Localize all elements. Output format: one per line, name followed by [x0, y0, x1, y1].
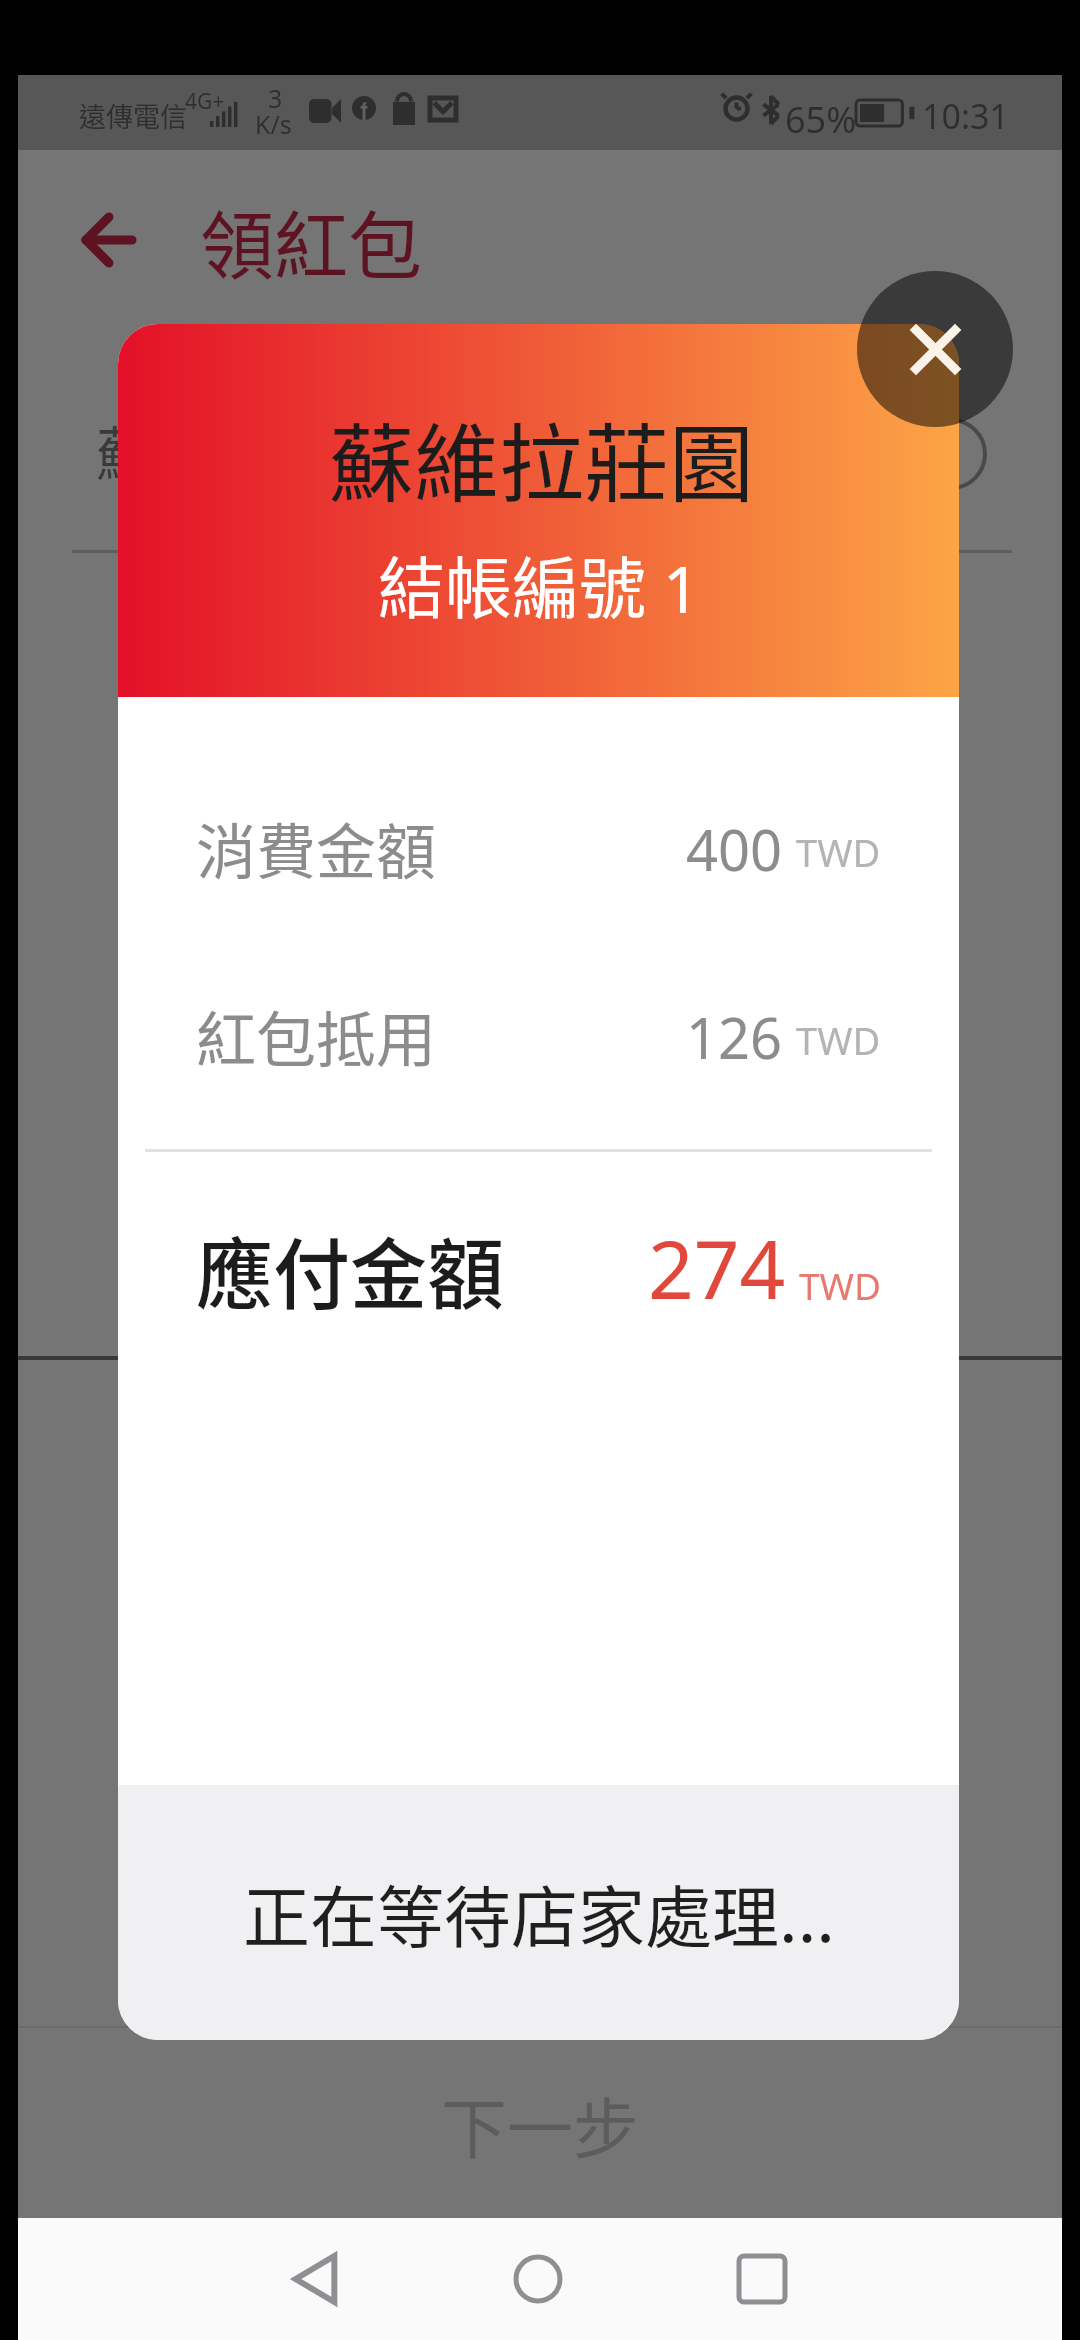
- button[interactable]: Recents: [702, 2218, 822, 2340]
- staticText: TWD: [799, 1260, 881, 1310]
- staticText: 下一步: [441, 2076, 639, 2172]
- staticText: TWD: [796, 826, 881, 878]
- staticText: 4G+: [185, 87, 225, 116]
- staticText: 274: [648, 1213, 786, 1322]
- staticText: 400: [686, 811, 783, 887]
- staticText: TWD: [796, 1014, 881, 1066]
- button[interactable]: 下一步: [18, 2064, 1062, 2184]
- staticText: 結帳編號: [378, 535, 646, 632]
- button[interactable]: Close: [857, 271, 1013, 427]
- button[interactable]: Home: [478, 2218, 598, 2340]
- button[interactable]: Back: [60, 164, 156, 316]
- staticText: 蘇維拉莊園: [329, 396, 755, 519]
- staticText: 10:31: [922, 93, 1009, 139]
- staticText: 消費金額: [196, 804, 436, 891]
- staticText: 正在等待店家處理...: [243, 1864, 835, 1961]
- staticText: 領紅包: [200, 187, 422, 294]
- staticText: 3: [268, 81, 283, 115]
- staticText: 126: [686, 999, 783, 1075]
- button[interactable]: Back: [255, 2218, 375, 2340]
- staticText: 蘇維拉莊園: [96, 408, 387, 492]
- staticText: 紅包抵用: [196, 992, 436, 1079]
- staticText: K/s: [255, 107, 292, 141]
- staticText: 1: [663, 545, 700, 632]
- staticText: 遠傳電信: [79, 96, 187, 135]
- staticText: 應付金額: [196, 1214, 504, 1325]
- staticText: 65%: [785, 95, 857, 144]
